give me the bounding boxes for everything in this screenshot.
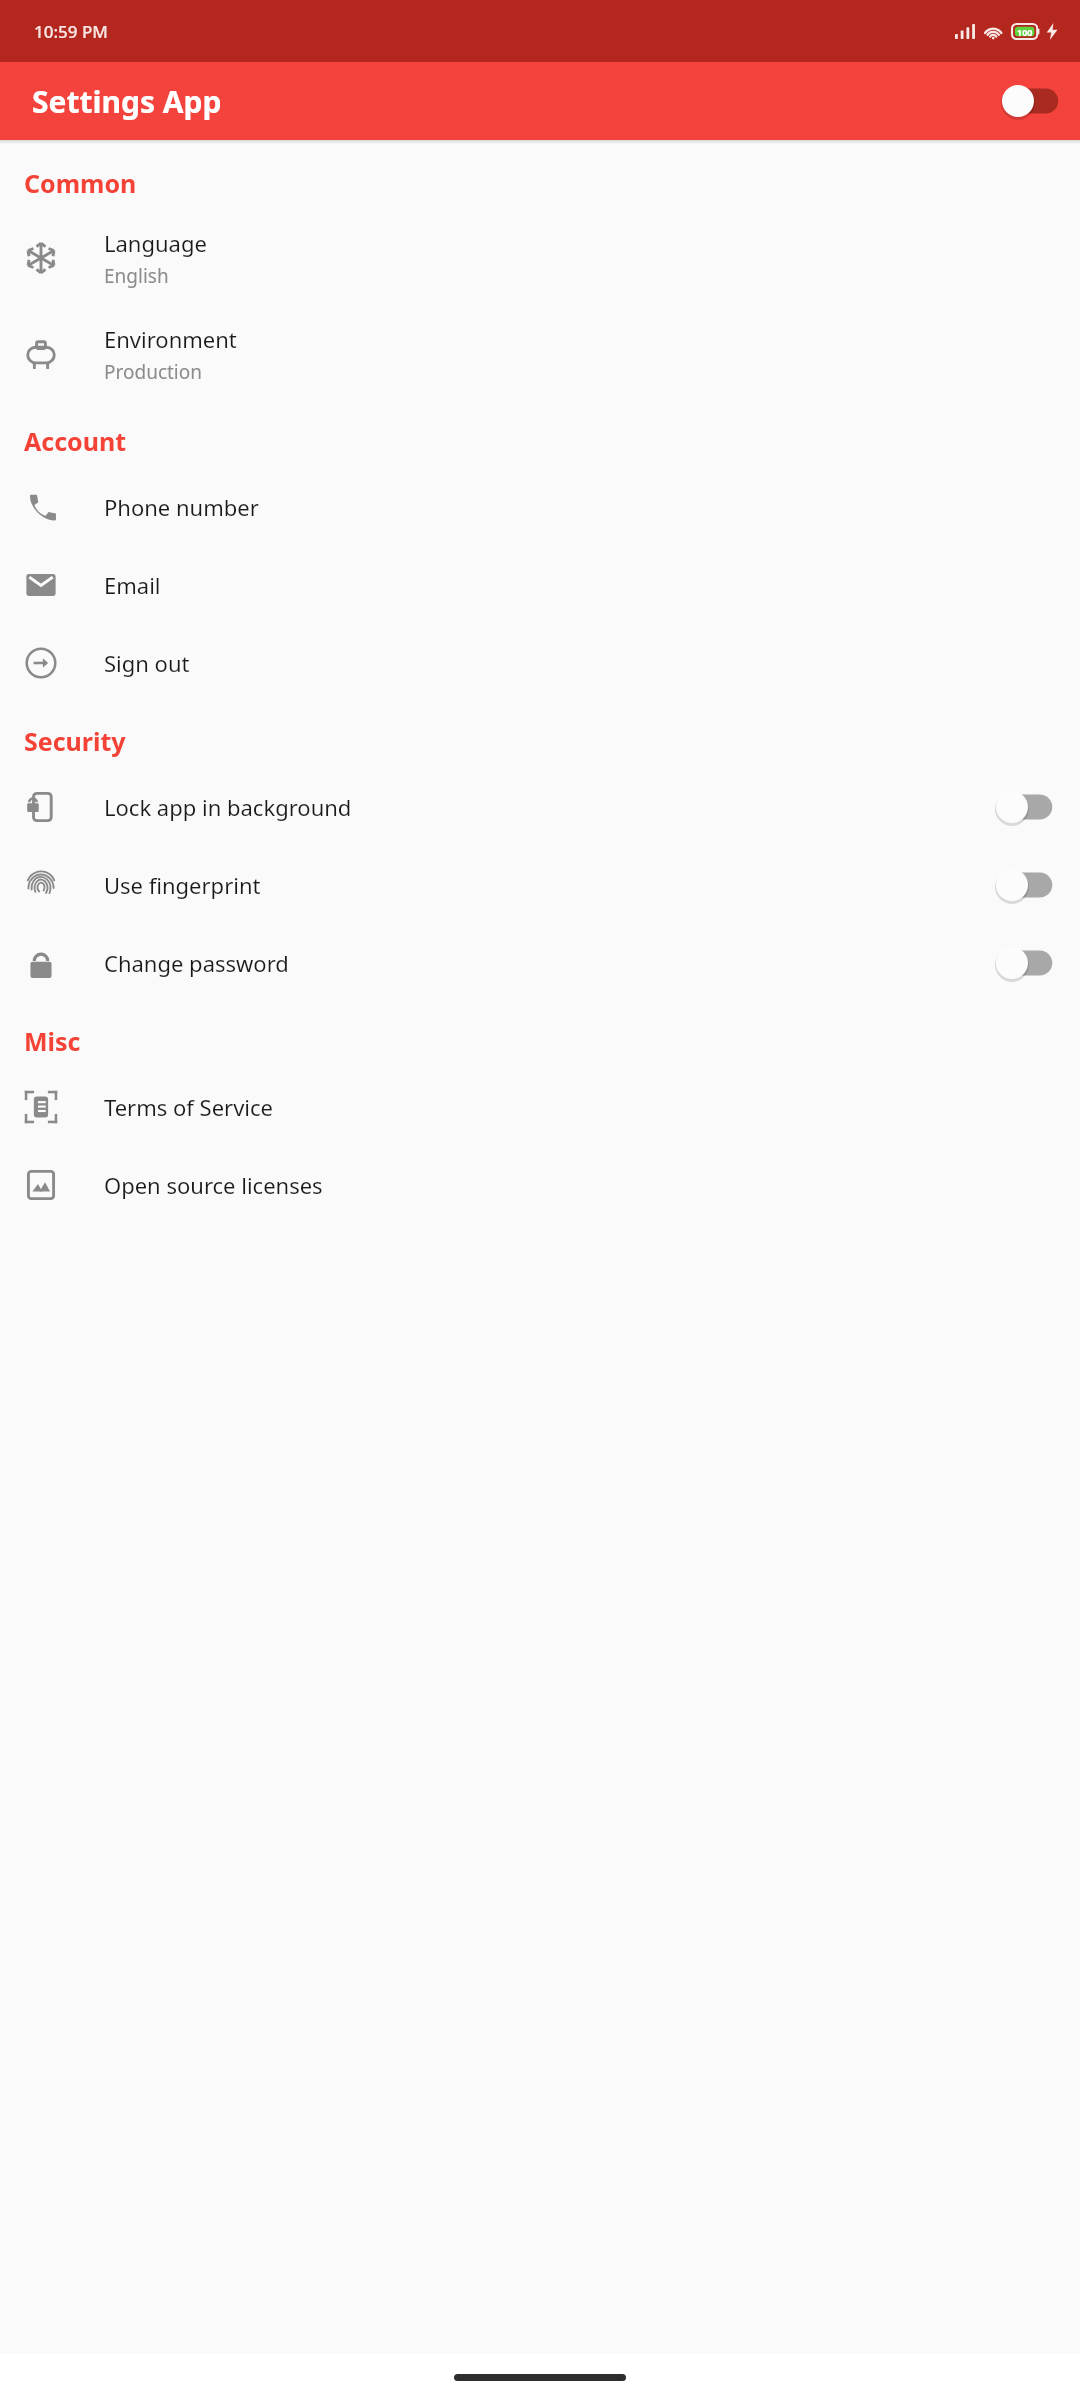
staticText: Email	[104, 570, 161, 600]
staticText: Terms of Service	[104, 1092, 274, 1122]
button[interactable]: Change password	[0, 924, 1080, 1002]
button[interactable]: Terms of Service	[0, 1068, 1080, 1146]
staticText: Environment	[104, 324, 237, 354]
staticText: Common	[24, 166, 137, 200]
button[interactable]: Phone number	[0, 468, 1080, 546]
staticText: Account	[24, 424, 127, 458]
staticText: Security	[24, 724, 126, 758]
staticText: Language	[104, 228, 207, 258]
staticText: Change password	[104, 948, 289, 978]
staticText: English	[104, 263, 169, 289]
staticText: Settings App	[32, 81, 222, 122]
staticText: Production	[104, 359, 203, 385]
staticText: Phone number	[104, 492, 259, 522]
staticText: Sign out	[104, 648, 190, 678]
button[interactable]: Sign out	[0, 624, 1080, 702]
button[interactable]: Lock app in background	[0, 768, 1080, 846]
staticText: Lock app in background	[104, 792, 352, 822]
staticText: 100	[1017, 26, 1033, 38]
button[interactable]: Open source licenses	[0, 1146, 1080, 1224]
staticText: Misc	[24, 1024, 81, 1058]
button[interactable]: Environment	[0, 306, 1080, 402]
staticText: Use fingerprint	[104, 870, 261, 900]
staticText: 10:59 PM	[34, 20, 108, 43]
staticText: Open source licenses	[104, 1170, 323, 1200]
button[interactable]: Language	[0, 210, 1080, 306]
button[interactable]: Use fingerprint	[0, 846, 1080, 924]
button[interactable]: Email	[0, 546, 1080, 624]
button[interactable]: Toggle setting	[1000, 81, 1062, 121]
